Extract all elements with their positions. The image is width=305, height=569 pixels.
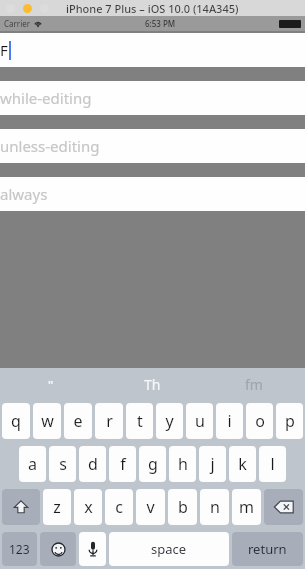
staticText: o	[255, 410, 265, 432]
button[interactable]: always	[0, 177, 305, 211]
staticText: m	[239, 496, 254, 518]
button[interactable]: h	[169, 446, 196, 482]
staticText: always	[0, 184, 48, 204]
button[interactable]: Th	[101, 368, 203, 400]
button[interactable]: F	[0, 33, 305, 67]
staticText: q	[11, 410, 21, 432]
button[interactable]: p	[276, 403, 303, 439]
staticText: while-editing	[0, 88, 92, 108]
button[interactable]: Shift	[2, 489, 40, 525]
button[interactable]: l	[259, 446, 286, 482]
button[interactable]: t	[126, 403, 153, 439]
staticText: g	[148, 453, 158, 475]
button[interactable]: a	[19, 446, 46, 482]
button[interactable]: f	[109, 446, 136, 482]
button[interactable]: space	[109, 532, 229, 566]
button[interactable]: v	[136, 489, 165, 525]
staticText: z	[53, 496, 61, 518]
staticText: 6:53 PM	[145, 18, 176, 29]
staticText: return	[248, 540, 287, 558]
staticText: y	[165, 410, 174, 432]
staticText: w	[41, 410, 54, 432]
button[interactable]: z	[43, 489, 71, 525]
staticText: a	[28, 453, 37, 475]
staticText: fm	[245, 375, 263, 394]
staticText: t	[137, 410, 143, 432]
staticText: r	[106, 410, 113, 432]
button[interactable]: 123	[2, 532, 37, 566]
staticText: 123	[9, 541, 30, 557]
staticText: iPhone 7 Plus – iOS 10.0 (14A345)	[66, 1, 239, 16]
staticText: i	[227, 410, 232, 432]
staticText: Th	[144, 375, 161, 394]
staticText: Carrier	[4, 18, 31, 29]
button[interactable]: w	[33, 403, 61, 439]
button[interactable]: fm	[203, 368, 305, 400]
staticText: d	[88, 453, 98, 475]
staticText: e	[73, 410, 83, 432]
button[interactable]: o	[246, 403, 273, 439]
staticText: s	[59, 453, 67, 475]
button[interactable]: m	[232, 489, 261, 525]
button[interactable]: Backspace	[264, 489, 303, 525]
staticText: unless-editing	[0, 136, 100, 156]
staticText: "	[48, 377, 54, 392]
staticText: u	[195, 410, 205, 432]
staticText: f	[120, 453, 126, 475]
button[interactable]: k	[229, 446, 256, 482]
button[interactable]: i	[216, 403, 243, 439]
staticText: l	[270, 453, 275, 475]
staticText: h	[178, 453, 188, 475]
button[interactable]: Dictation	[79, 532, 106, 566]
staticText: j	[210, 453, 215, 475]
button[interactable]: q	[2, 403, 30, 439]
button[interactable]: n	[200, 489, 229, 525]
button[interactable]: b	[168, 489, 197, 525]
staticText: space	[151, 540, 187, 558]
button[interactable]: d	[79, 446, 106, 482]
button[interactable]: unless-editing	[0, 129, 305, 163]
button[interactable]: Minimize	[23, 4, 32, 13]
button[interactable]: return	[232, 532, 303, 566]
staticText: p	[285, 410, 295, 432]
button[interactable]: while-editing	[0, 81, 305, 115]
button[interactable]: g	[139, 446, 166, 482]
staticText: v	[146, 496, 155, 518]
staticText: x	[84, 496, 93, 518]
button[interactable]: y	[156, 403, 183, 439]
button[interactable]: x	[74, 489, 102, 525]
button[interactable]: Emoji	[40, 532, 76, 566]
staticText: c	[115, 496, 123, 518]
staticText: k	[238, 453, 247, 475]
staticText: b	[178, 496, 188, 518]
button[interactable]: j	[199, 446, 226, 482]
button[interactable]: c	[105, 489, 133, 525]
staticText: n	[210, 496, 220, 518]
button[interactable]: e	[64, 403, 92, 439]
button[interactable]: u	[186, 403, 213, 439]
button[interactable]: s	[49, 446, 76, 482]
button[interactable]: r	[95, 403, 123, 439]
staticText: F	[0, 40, 8, 60]
